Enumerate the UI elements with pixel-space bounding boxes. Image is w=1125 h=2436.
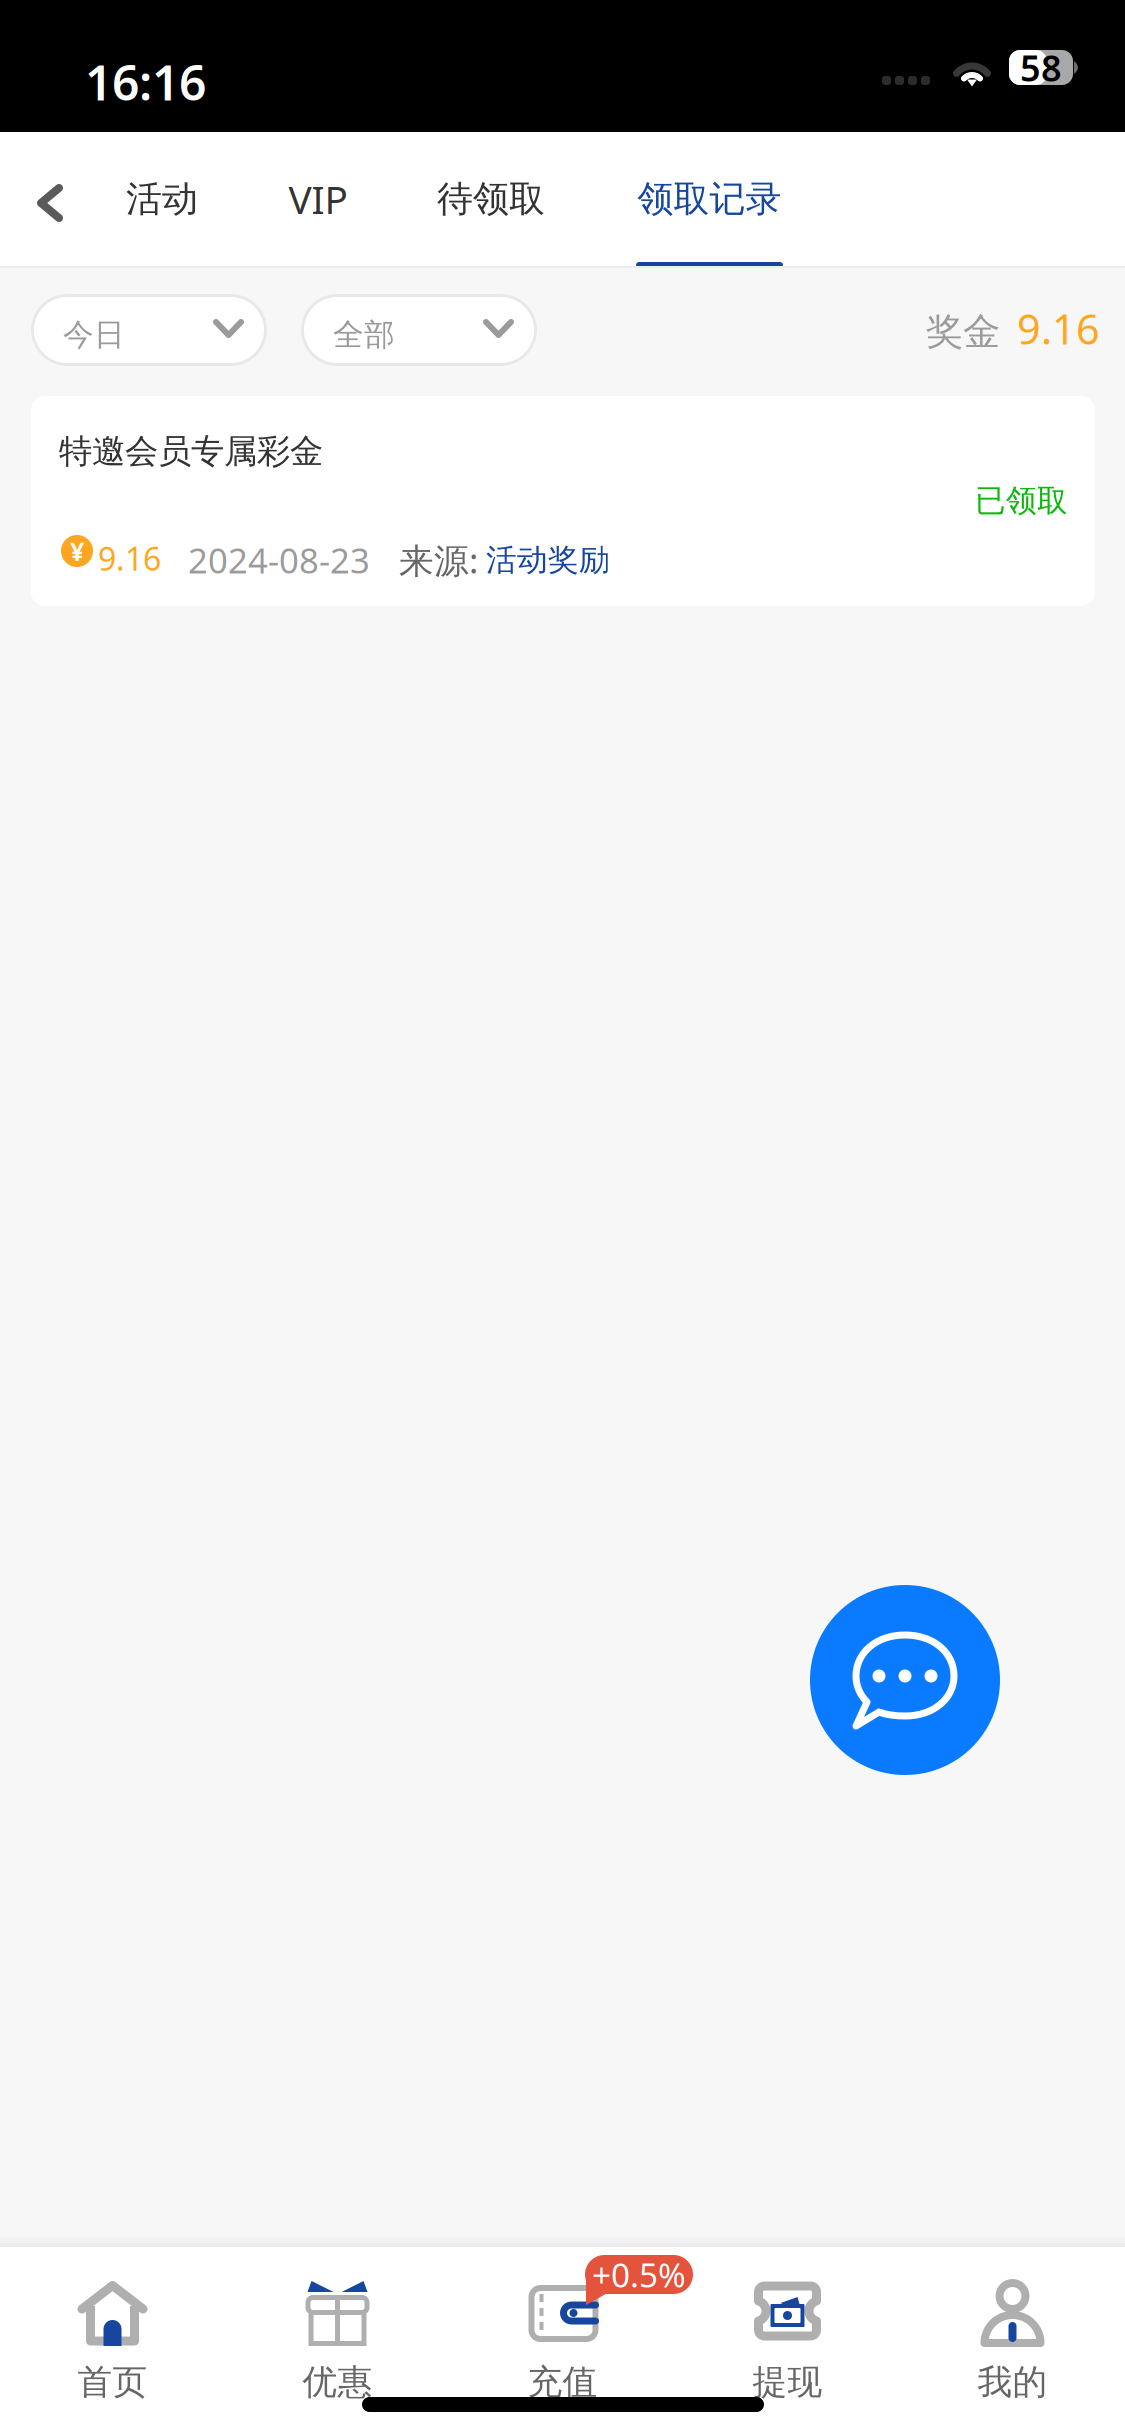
button[interactable]: 我的 <box>900 2247 1125 2436</box>
staticText: 58 <box>1020 44 1062 91</box>
staticText: 待领取 <box>437 177 545 221</box>
staticText: 9.16 <box>1017 301 1100 356</box>
button[interactable]: 今日 <box>31 294 267 366</box>
button[interactable]: 优惠 <box>225 2247 450 2436</box>
staticText: 活动奖励 <box>486 541 610 579</box>
staticText: 今日 <box>63 316 125 354</box>
staticText: 来源: <box>399 537 478 583</box>
staticText: 我的 <box>977 2361 1047 2404</box>
staticText: 奖金 <box>926 309 1000 355</box>
staticText: 已领取 <box>975 482 1068 520</box>
staticText: ¥ <box>70 534 84 568</box>
button[interactable]: 待领取 <box>421 165 561 233</box>
staticText: 提现 <box>752 2361 822 2404</box>
staticText: +0.5% <box>592 2252 686 2297</box>
staticText: 特邀会员专属彩金 <box>59 431 323 472</box>
staticText: 活动 <box>126 177 198 221</box>
button[interactable]: 全部 <box>301 294 537 366</box>
button[interactable]: 提现 <box>675 2247 900 2436</box>
button[interactable]: Customer service chat <box>810 1585 1000 1775</box>
staticText: 首页 <box>77 2361 147 2404</box>
button[interactable]: 活动 <box>112 165 212 233</box>
button[interactable]: 充值 <box>450 2247 675 2436</box>
staticText: 2024-08-23 <box>188 537 370 583</box>
button[interactable]: Back <box>9 155 97 251</box>
staticText: 全部 <box>333 316 395 354</box>
staticText: VIP <box>288 173 347 225</box>
staticText: 领取记录 <box>637 177 781 221</box>
staticText: 充值 <box>527 2361 597 2404</box>
staticText: 16:16 <box>85 50 206 114</box>
staticText: 9.16 <box>98 537 161 579</box>
staticText: 优惠 <box>302 2361 372 2404</box>
button[interactable]: 首页 <box>0 2247 225 2436</box>
button[interactable]: 领取记录 <box>620 165 799 268</box>
button[interactable]: VIP <box>273 165 363 233</box>
